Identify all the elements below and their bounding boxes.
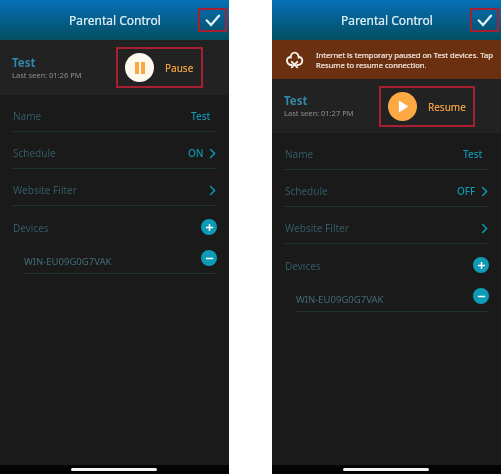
- staticText: Test: [284, 93, 308, 109]
- button[interactable]: Schedule: [0, 132, 229, 169]
- staticText: Test: [191, 109, 211, 123]
- button[interactable]: Add device: [201, 219, 217, 235]
- staticText: Parental Control: [341, 12, 433, 28]
- button[interactable]: Devices: [0, 206, 229, 243]
- staticText: Internet is temporary paused on Test dev…: [316, 50, 494, 70]
- staticText: Parental Control: [69, 12, 161, 28]
- staticText: Website Filter: [13, 183, 77, 197]
- staticText: WIN-EU09G0G7VAK: [24, 255, 112, 268]
- staticText: Devices: [13, 221, 49, 235]
- button[interactable]: Confirm: [470, 8, 499, 32]
- button[interactable]: Website Filter: [0, 169, 229, 206]
- staticText: Last seen: 01:26 PM: [12, 70, 82, 80]
- staticText: Name: [285, 147, 314, 161]
- staticText: Schedule: [285, 184, 328, 198]
- button[interactable]: Name: [272, 133, 501, 170]
- staticText: Test: [12, 55, 36, 71]
- button[interactable]: Pause: [116, 47, 203, 88]
- button[interactable]: Internet is temporary paused on Test dev…: [272, 40, 501, 79]
- button[interactable]: Add device: [473, 257, 489, 273]
- staticText: Devices: [285, 259, 321, 273]
- staticText: Pause: [165, 61, 194, 75]
- button[interactable]: Remove device: [201, 250, 217, 266]
- button[interactable]: Name: [0, 95, 229, 132]
- staticText: Schedule: [13, 146, 56, 160]
- button[interactable]: WIN-EU09G0G7VAK: [0, 243, 229, 274]
- button[interactable]: Confirm: [198, 8, 227, 32]
- staticText: Website Filter: [285, 221, 349, 235]
- button[interactable]: Schedule: [272, 170, 501, 207]
- staticText: Name: [13, 109, 42, 123]
- staticText: Resume: [428, 100, 466, 114]
- button[interactable]: Remove device: [473, 288, 489, 304]
- button[interactable]: Resume: [379, 86, 475, 127]
- button[interactable]: WIN-EU09G0G7VAK: [272, 281, 501, 312]
- staticText: WIN-EU09G0G7VAK: [296, 293, 384, 306]
- button[interactable]: Website Filter: [272, 207, 501, 244]
- staticText: ON: [188, 146, 204, 160]
- staticText: Last seen: 01:27 PM: [284, 108, 354, 118]
- staticText: Test: [463, 147, 483, 161]
- staticText: OFF: [457, 184, 476, 198]
- button[interactable]: Devices: [272, 244, 501, 281]
